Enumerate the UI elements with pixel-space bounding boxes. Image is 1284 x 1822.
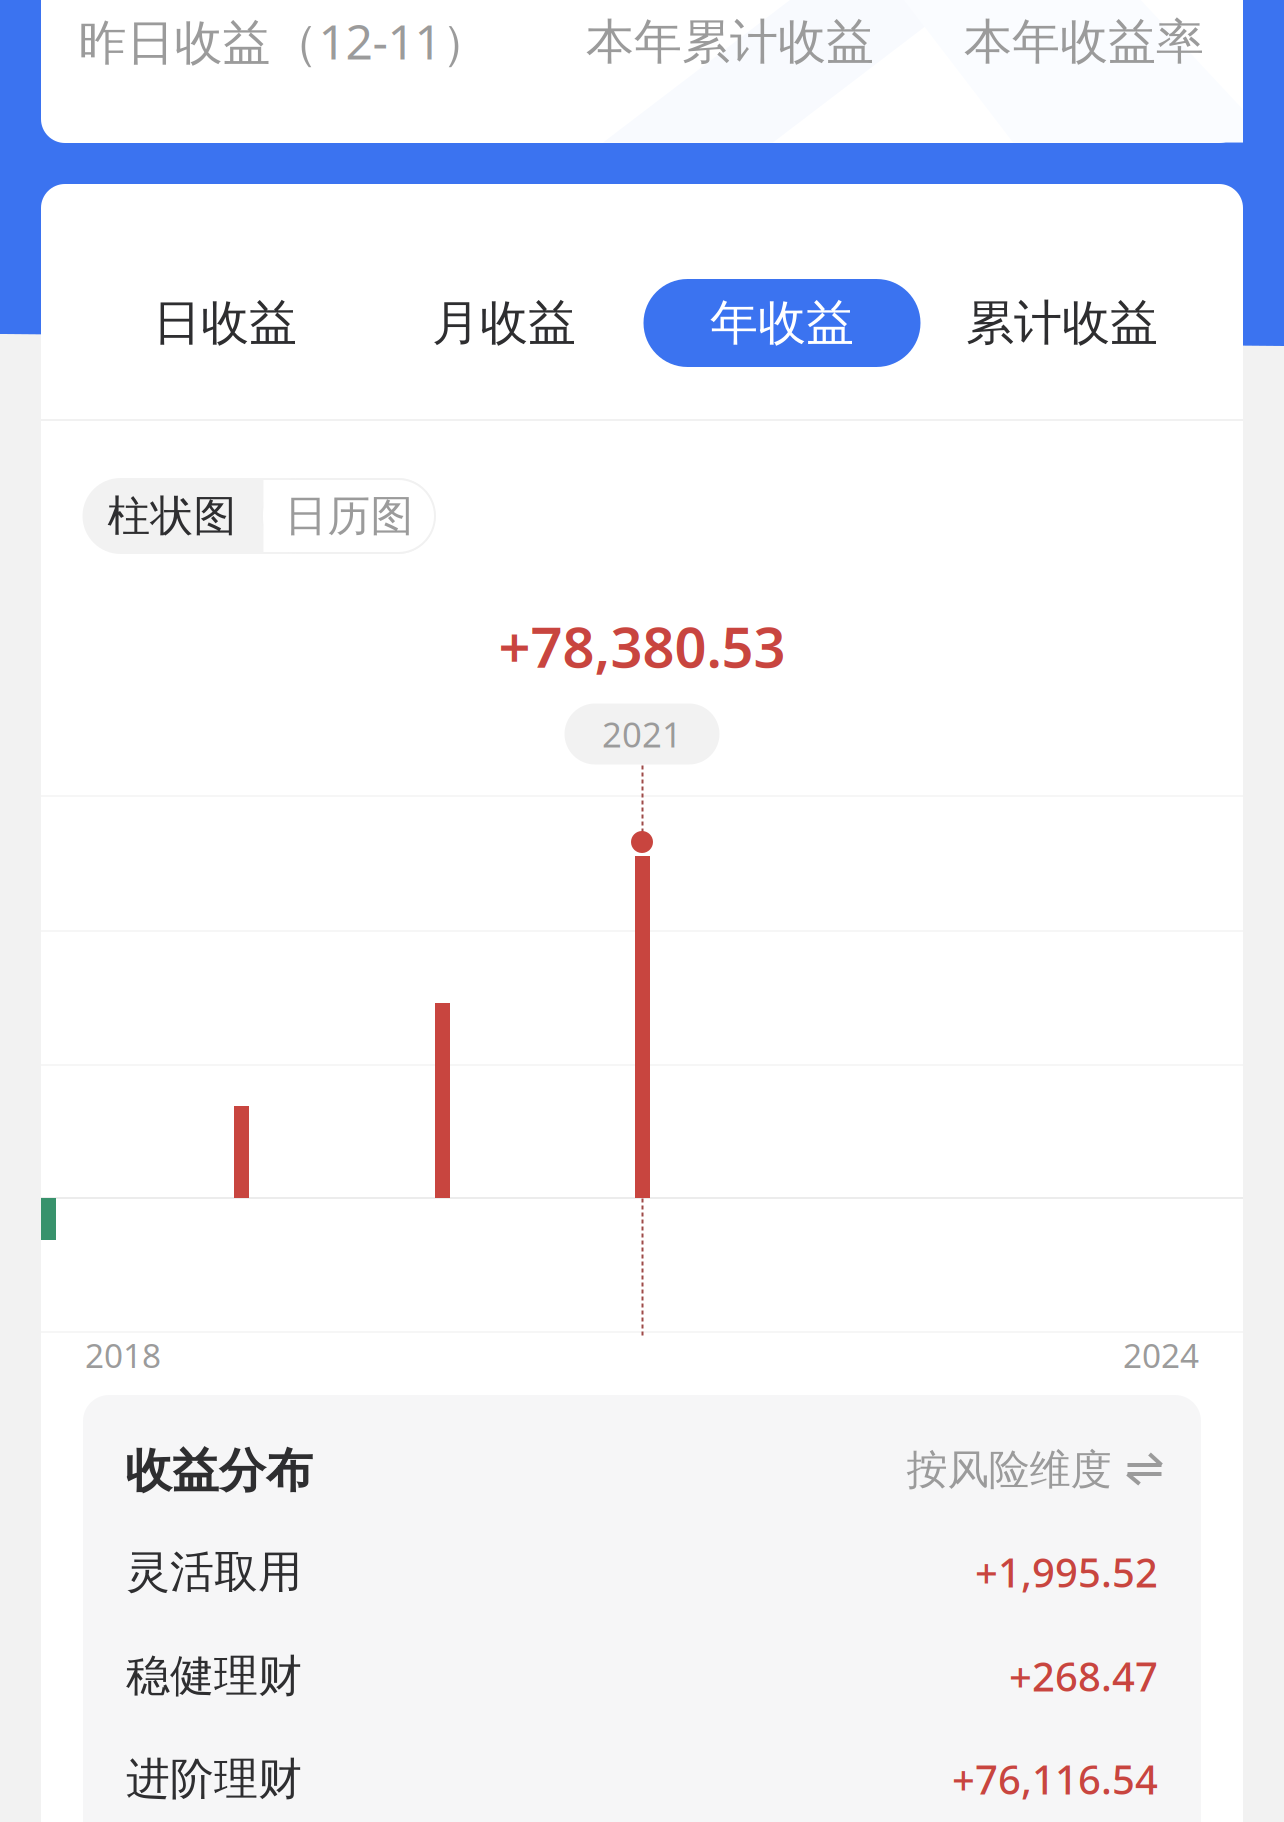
staticText: 灵活取用: [126, 1545, 302, 1599]
button[interactable]: 按风险维度: [906, 1435, 1161, 1505]
button[interactable]: 日收益: [87, 279, 363, 367]
staticText: 月收益: [432, 293, 576, 352]
staticText: 本年累计收益: [586, 12, 874, 71]
staticText: 日历图: [284, 490, 413, 542]
button[interactable]: 累计收益: [924, 279, 1200, 367]
button[interactable]: 柱状图: [82, 478, 261, 554]
button[interactable]: 昨日收益（12-11）: [74, 6, 494, 76]
staticText: 柱状图: [107, 490, 236, 542]
staticText: 2018: [85, 1333, 161, 1377]
staticText: 稳健理财: [126, 1649, 302, 1703]
staticText: 2024: [1123, 1333, 1199, 1377]
staticText: 2021: [602, 711, 682, 757]
staticText: 本年收益率: [964, 12, 1204, 71]
staticText: +1,995.52: [975, 1545, 1158, 1598]
staticText: 进阶理财: [126, 1752, 302, 1806]
staticText: 按风险维度: [906, 1445, 1111, 1495]
staticText: 收益分布: [125, 1442, 313, 1500]
button[interactable]: 年收益: [643, 279, 920, 367]
staticText: 累计收益: [966, 293, 1158, 352]
staticText: 昨日收益（12-11）: [78, 9, 489, 73]
button[interactable]: 稳健理财: [126, 1631, 1158, 1721]
staticText: +76,116.54: [952, 1752, 1158, 1805]
button[interactable]: 本年收益率: [949, 7, 1219, 77]
staticText: +78,380.53: [498, 609, 785, 683]
button[interactable]: 日历图: [262, 478, 436, 554]
staticText: +268.47: [1009, 1649, 1158, 1702]
button[interactable]: 月收益: [366, 279, 642, 367]
staticText: 日收益: [153, 293, 297, 352]
button[interactable]: 本年累计收益: [570, 7, 890, 77]
staticText: 年收益: [710, 293, 854, 352]
button[interactable]: 灵活取用: [126, 1527, 1158, 1617]
button[interactable]: 进阶理财: [126, 1734, 1158, 1822]
